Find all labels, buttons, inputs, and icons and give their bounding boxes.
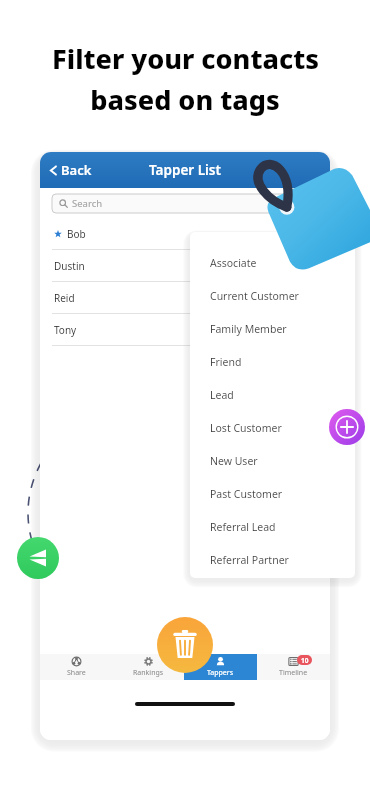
button[interactable]: Add xyxy=(329,409,365,445)
staticText: Bob xyxy=(67,227,86,241)
button[interactable]: Bob xyxy=(40,218,330,250)
staticText: Back xyxy=(61,161,92,179)
button[interactable]: Share xyxy=(40,654,112,680)
staticText: Rankings xyxy=(133,668,164,678)
staticText: Search xyxy=(72,197,103,210)
staticText: Friend xyxy=(210,355,242,369)
button[interactable]: Referral Partner xyxy=(190,543,355,576)
button[interactable]: Tappers xyxy=(184,654,257,680)
button[interactable]: Timeline xyxy=(257,654,330,680)
button[interactable]: Back xyxy=(48,161,92,179)
staticText: Lead xyxy=(210,388,234,402)
button[interactable]: Reid xyxy=(40,282,330,314)
button[interactable]: Send xyxy=(17,537,59,579)
staticText: Reid xyxy=(54,291,75,305)
button[interactable]: Associate xyxy=(190,246,355,279)
button[interactable]: Lost Customer xyxy=(190,411,355,444)
button[interactable]: Family Member xyxy=(190,312,355,345)
staticText: Tappers xyxy=(207,668,234,678)
button[interactable]: Search xyxy=(52,194,318,213)
button[interactable]: Lead xyxy=(190,378,355,411)
button[interactable]: Dustin xyxy=(40,250,330,282)
staticText: Family Member xyxy=(210,322,287,336)
staticText: Filter your contacts xyxy=(52,40,319,77)
staticText: Associate xyxy=(210,256,257,270)
staticText: Past Customer xyxy=(210,487,283,501)
button[interactable]: Rankings xyxy=(112,654,184,680)
button[interactable]: Current Customer xyxy=(190,279,355,312)
staticText: Share xyxy=(67,668,86,678)
staticText: based on tags xyxy=(90,81,280,118)
staticText: Lost Customer xyxy=(210,421,282,435)
staticText: Tapper List xyxy=(149,161,221,179)
staticText: Referral Lead xyxy=(210,520,276,534)
button[interactable]: Referral Lead xyxy=(190,510,355,543)
button[interactable]: New User xyxy=(190,444,355,477)
staticText: Referral Partner xyxy=(210,553,289,567)
button[interactable]: Past Customer xyxy=(190,477,355,510)
button[interactable]: Tony xyxy=(40,314,330,346)
button[interactable]: Delete xyxy=(157,617,213,673)
staticText: New User xyxy=(210,454,258,468)
staticText: 10 xyxy=(301,656,309,665)
staticText: Timeline xyxy=(279,668,308,678)
staticText: Current Customer xyxy=(210,289,299,303)
staticText: Tony xyxy=(54,323,77,337)
button[interactable]: Friend xyxy=(190,345,355,378)
staticText: Dustin xyxy=(54,259,85,273)
